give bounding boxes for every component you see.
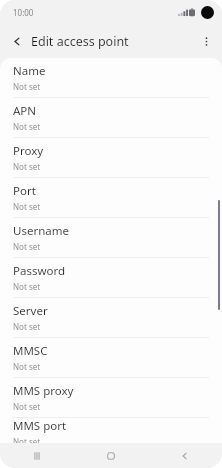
- staticText: Not set: [13, 321, 41, 332]
- button[interactable]: Back: [148, 443, 222, 468]
- button[interactable]: Username: [0, 218, 222, 257]
- staticText: Not set: [13, 201, 41, 212]
- staticText: Not set: [13, 361, 41, 372]
- staticText: Port: [13, 183, 36, 199]
- button[interactable]: Home: [74, 443, 148, 468]
- staticText: Not set: [13, 436, 41, 443]
- staticText: APN: [13, 103, 37, 119]
- staticText: Not set: [13, 121, 41, 132]
- staticText: Not set: [13, 161, 41, 172]
- button[interactable]: Port: [0, 178, 222, 217]
- button[interactable]: Proxy: [0, 138, 222, 177]
- staticText: MMS port: [13, 418, 67, 434]
- staticText: MMSC: [13, 343, 48, 359]
- staticText: Edit access point: [31, 33, 129, 50]
- button[interactable]: APN: [0, 98, 222, 137]
- staticText: Not set: [13, 281, 41, 292]
- button[interactable]: Back: [4, 28, 30, 54]
- staticText: Username: [13, 223, 69, 239]
- button[interactable]: Server: [0, 298, 222, 337]
- staticText: Server: [13, 303, 48, 319]
- button[interactable]: More options: [193, 28, 219, 54]
- staticText: Name: [13, 63, 46, 79]
- staticText: Proxy: [13, 143, 44, 159]
- button[interactable]: Password: [0, 258, 222, 297]
- staticText: MMS proxy: [13, 383, 74, 399]
- button[interactable]: Recent apps: [0, 443, 74, 468]
- staticText: Password: [13, 263, 66, 279]
- button[interactable]: MMSC: [0, 338, 222, 377]
- button[interactable]: MMS port: [0, 418, 222, 443]
- staticText: 10:00: [13, 7, 34, 18]
- button[interactable]: MMS proxy: [0, 378, 222, 417]
- staticText: Not set: [13, 81, 41, 92]
- staticText: Not set: [13, 241, 41, 252]
- button[interactable]: Name: [0, 58, 222, 97]
- staticText: Not set: [13, 401, 41, 412]
